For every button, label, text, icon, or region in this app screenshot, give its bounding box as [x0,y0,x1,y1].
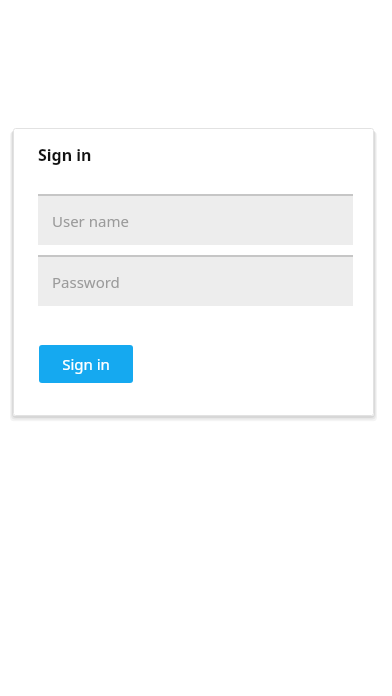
button[interactable]: Password [38,255,353,306]
button[interactable]: User name [38,194,353,245]
staticText: User name [52,211,129,231]
button[interactable]: Sign in [39,345,133,383]
staticText: Password [52,272,120,292]
staticText: Sign in [62,354,110,374]
staticText: Sign in [38,144,92,166]
